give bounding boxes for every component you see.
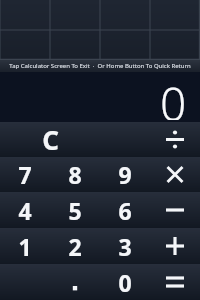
staticText: 3 [118,231,132,262]
button[interactable]: 2 [50,228,100,264]
button[interactable]: Plus [150,228,200,264]
staticText: Tap Calculator Screen To Exit · Or Home … [9,62,191,70]
staticText: 0 [160,72,187,120]
button[interactable]: Tap Calculator Screen To Exit · Or Home … [0,60,200,72]
button[interactable]: Equals [150,264,200,300]
staticText: 7 [18,159,32,190]
staticText: 2 [68,231,82,262]
button[interactable]: 4 [0,192,50,228]
staticText: 4 [18,195,32,226]
staticText: 9 [118,159,132,190]
button[interactable]: Display 0 [0,72,200,122]
button[interactable]: 5 [50,192,100,228]
staticText: C [42,122,59,157]
button[interactable]: 0 [100,264,150,300]
button[interactable]: blank2 [0,264,50,300]
staticText: 1 [18,231,32,262]
button[interactable]: blank [100,122,150,157]
button[interactable]: 3 [100,228,150,264]
button[interactable]: Decimal point [50,264,100,300]
button[interactable]: Divide [150,122,200,157]
button[interactable]: 9 [100,157,150,192]
button[interactable]: Multiply [150,157,200,192]
staticText: 5 [68,195,82,226]
button[interactable]: 6 [100,192,150,228]
staticText: 8 [68,159,82,190]
button[interactable]: Clear [0,122,100,157]
button[interactable]: 1 [0,228,50,264]
button[interactable]: Minus [150,192,200,228]
staticText: 0 [118,267,132,298]
staticText: 6 [118,195,132,226]
button[interactable]: 8 [50,157,100,192]
button[interactable]: 7 [0,157,50,192]
